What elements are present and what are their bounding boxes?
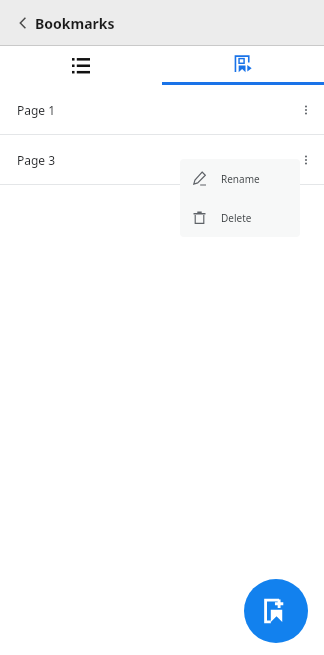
- button[interactable]: More options: [290, 144, 322, 176]
- button[interactable]: Bookmarks: [162, 46, 324, 85]
- staticText: Delete: [221, 211, 252, 225]
- button[interactable]: Reading list: [0, 46, 162, 85]
- staticText: Page 1: [17, 102, 56, 118]
- button[interactable]: Delete: [180, 198, 300, 237]
- button[interactable]: More options: [290, 94, 322, 126]
- button[interactable]: Page 3: [0, 135, 324, 185]
- staticText: Rename: [221, 172, 260, 186]
- button[interactable]: Back: [6, 6, 40, 40]
- button[interactable]: Page 1: [0, 85, 324, 135]
- button[interactable]: Add bookmark: [244, 579, 308, 643]
- staticText: Page 3: [17, 152, 56, 168]
- staticText: Bookmarks: [35, 14, 115, 33]
- button[interactable]: Rename: [180, 159, 300, 198]
